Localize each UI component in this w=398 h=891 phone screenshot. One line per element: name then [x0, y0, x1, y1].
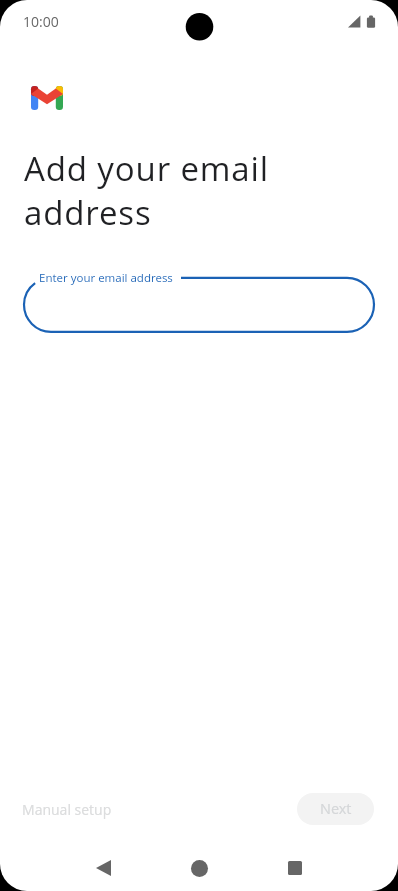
button[interactable]: Recent apps — [271, 844, 319, 891]
staticText: Add your email address — [24, 146, 269, 235]
button[interactable]: Home — [175, 844, 223, 891]
button[interactable]: Manual setup — [11, 793, 123, 826]
button[interactable]: Back — [79, 844, 127, 891]
staticText: Next — [320, 799, 352, 819]
button[interactable]: Next — [297, 793, 374, 825]
staticText: Enter your email address — [39, 270, 173, 286]
staticText: 10:00 — [23, 12, 59, 31]
staticText: Manual setup — [22, 800, 112, 819]
